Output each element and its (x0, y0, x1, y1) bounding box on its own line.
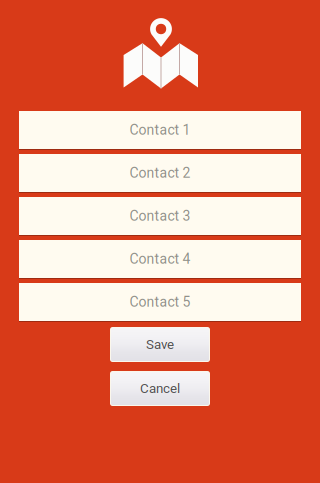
staticText: Contact 2 (129, 165, 190, 181)
button[interactable]: Contact 2 (19, 154, 301, 193)
button[interactable]: Cancel (110, 371, 210, 406)
staticText: Cancel (140, 381, 180, 396)
button[interactable]: Save (110, 327, 210, 362)
button[interactable]: Contact 5 (19, 283, 301, 322)
staticText: Contact 3 (129, 208, 190, 224)
button[interactable]: Contact 1 (19, 111, 301, 150)
staticText: Contact 1 (129, 122, 190, 138)
button[interactable]: Contact 3 (19, 197, 301, 236)
button[interactable]: Contact 4 (19, 240, 301, 279)
staticText: Save (146, 337, 174, 352)
staticText: Contact 4 (129, 251, 190, 267)
staticText: Contact 5 (129, 294, 190, 310)
